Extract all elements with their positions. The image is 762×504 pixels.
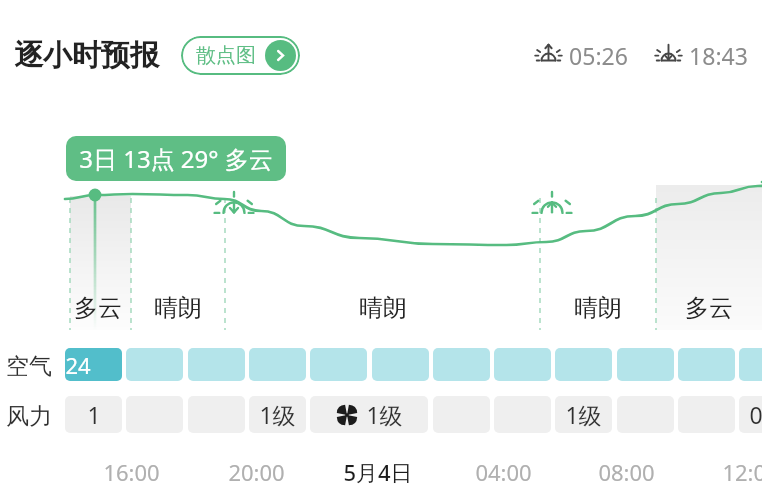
staticText: 5月4日 xyxy=(343,457,413,487)
button[interactable]: 1 xyxy=(65,396,122,433)
button[interactable]: 3日 13点 29° 多云 xyxy=(66,136,286,181)
staticText: 24 xyxy=(65,350,91,380)
button[interactable] xyxy=(433,348,490,381)
button[interactable] xyxy=(372,348,429,381)
staticText: 晴朗 xyxy=(154,293,202,323)
button[interactable] xyxy=(555,348,612,381)
staticText: 16:00 xyxy=(103,457,160,487)
button[interactable] xyxy=(739,348,762,381)
staticText: 1级 xyxy=(366,399,403,430)
button[interactable]: 1级 xyxy=(555,396,612,433)
staticText: 3日 13点 29° 多云 xyxy=(79,142,273,175)
button[interactable] xyxy=(188,348,245,381)
staticText: 0级 xyxy=(749,399,762,430)
button[interactable] xyxy=(494,348,551,381)
button[interactable]: 散点图 xyxy=(181,36,300,75)
button[interactable] xyxy=(617,348,674,381)
button[interactable]: 1级 xyxy=(310,396,428,433)
button[interactable]: Sunrise time xyxy=(536,40,628,71)
button[interactable] xyxy=(678,348,735,381)
button[interactable] xyxy=(126,348,183,381)
staticText: 多云 xyxy=(685,293,733,323)
staticText: 08:00 xyxy=(598,457,655,487)
button[interactable]: Sunset time xyxy=(656,40,748,71)
staticText: 逐小时预报 xyxy=(14,37,159,74)
staticText: 05:26 xyxy=(569,40,628,71)
staticText: 12:00 xyxy=(722,457,762,487)
button[interactable]: 0级 xyxy=(739,396,762,433)
staticText: 20:00 xyxy=(228,457,285,487)
staticText: 1级 xyxy=(565,399,602,430)
staticText: 1 xyxy=(87,399,101,430)
staticText: 1级 xyxy=(259,399,296,430)
staticText: 空气 xyxy=(6,352,52,381)
staticText: 多云 xyxy=(74,293,122,323)
staticText: 18:43 xyxy=(689,40,748,71)
button[interactable]: 1级 xyxy=(249,396,306,433)
button[interactable] xyxy=(310,348,367,381)
button[interactable]: 24 xyxy=(65,348,122,381)
staticText: 04:00 xyxy=(475,457,532,487)
staticText: 晴朗 xyxy=(574,293,622,323)
button[interactable] xyxy=(249,348,306,381)
staticText: 风力 xyxy=(6,402,52,431)
staticText: 散点图 xyxy=(196,43,256,68)
staticText: 晴朗 xyxy=(359,293,407,323)
